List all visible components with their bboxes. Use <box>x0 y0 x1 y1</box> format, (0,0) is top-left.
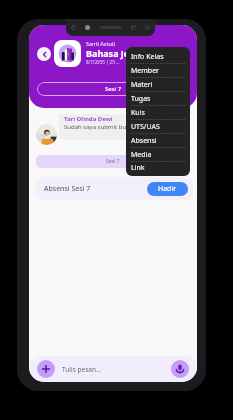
staticText: Sesi 7 <box>106 158 120 165</box>
staticText: Kuis <box>131 108 145 118</box>
staticText: Materi <box>131 80 153 90</box>
button[interactable]: Member <box>131 64 185 77</box>
button[interactable]: Add attachment <box>37 360 55 378</box>
button[interactable]: Voice message <box>171 360 189 378</box>
button[interactable]: UTS/UAS <box>131 120 185 133</box>
staticText: Hadir <box>158 184 177 194</box>
staticText: Santi Astuti <box>86 40 116 47</box>
button[interactable]: Tari Olinda Dewi <box>59 114 154 140</box>
staticText: Sudah saya submit bu <box>64 123 127 131</box>
button[interactable]: Tugas <box>131 92 185 105</box>
button[interactable]: Link <box>131 162 185 173</box>
staticText: Bahasa Je <box>86 47 130 59</box>
staticText: Absensi Sesi 7 <box>44 184 91 194</box>
button[interactable]: Hadir <box>147 182 188 196</box>
button[interactable]: Absensi <box>131 134 185 147</box>
button[interactable]: Kuis <box>131 106 185 119</box>
button[interactable]: Back <box>37 47 51 61</box>
staticText: 15:2 <box>143 131 151 136</box>
button[interactable]: Materi <box>131 78 185 91</box>
staticText: Tulis pesan... <box>62 365 102 374</box>
staticText: Absensi <box>131 136 157 146</box>
staticText: 8/7/2055 | 25 ... <box>86 59 120 65</box>
staticText: Tugas <box>131 94 151 104</box>
staticText: Sesi 7 <box>105 85 122 93</box>
staticText: Member <box>131 66 159 76</box>
staticText: Media <box>131 150 152 160</box>
staticText: UTS/UAS <box>131 122 160 132</box>
staticText: Info Kelas <box>131 52 164 62</box>
button[interactable]: Media <box>131 148 185 161</box>
staticText: Link <box>131 163 145 173</box>
button[interactable]: Info Kelas <box>131 50 185 63</box>
button[interactable]: Sesi 7 <box>37 82 190 96</box>
staticText: Tari Olinda Dewi <box>64 115 113 123</box>
